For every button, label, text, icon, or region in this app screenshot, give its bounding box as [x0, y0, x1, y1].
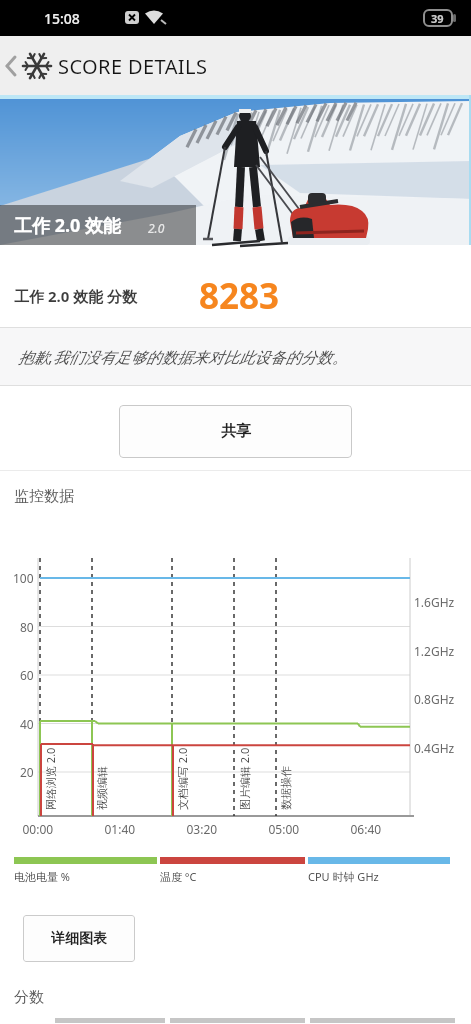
- staticText: 抱歉,我们没有足够的数据来对比此设备的分数。: [18, 346, 348, 367]
- staticText: 共享: [221, 422, 251, 441]
- button[interactable]: [0, 36, 24, 95]
- button[interactable]: 共享: [119, 405, 352, 458]
- staticText: 详细图表: [51, 930, 107, 948]
- staticText: 温度 °C: [160, 869, 197, 884]
- staticText: 分数: [14, 988, 44, 1007]
- staticText: 39: [431, 11, 444, 26]
- staticText: 2.0: [148, 220, 165, 236]
- staticText: 工作 2.0 效能 分数: [14, 286, 138, 306]
- staticText: SCORE DETAILS: [58, 53, 208, 80]
- staticText: 工作 2.0 效能: [14, 213, 122, 238]
- staticText: CPU 时钟 GHz: [308, 869, 379, 884]
- staticText: 15:08: [44, 9, 80, 28]
- button[interactable]: 详细图表: [23, 915, 135, 962]
- staticText: 8283: [199, 272, 280, 320]
- staticText: 电池电量 %: [14, 869, 71, 884]
- staticText: 监控数据: [14, 487, 74, 506]
